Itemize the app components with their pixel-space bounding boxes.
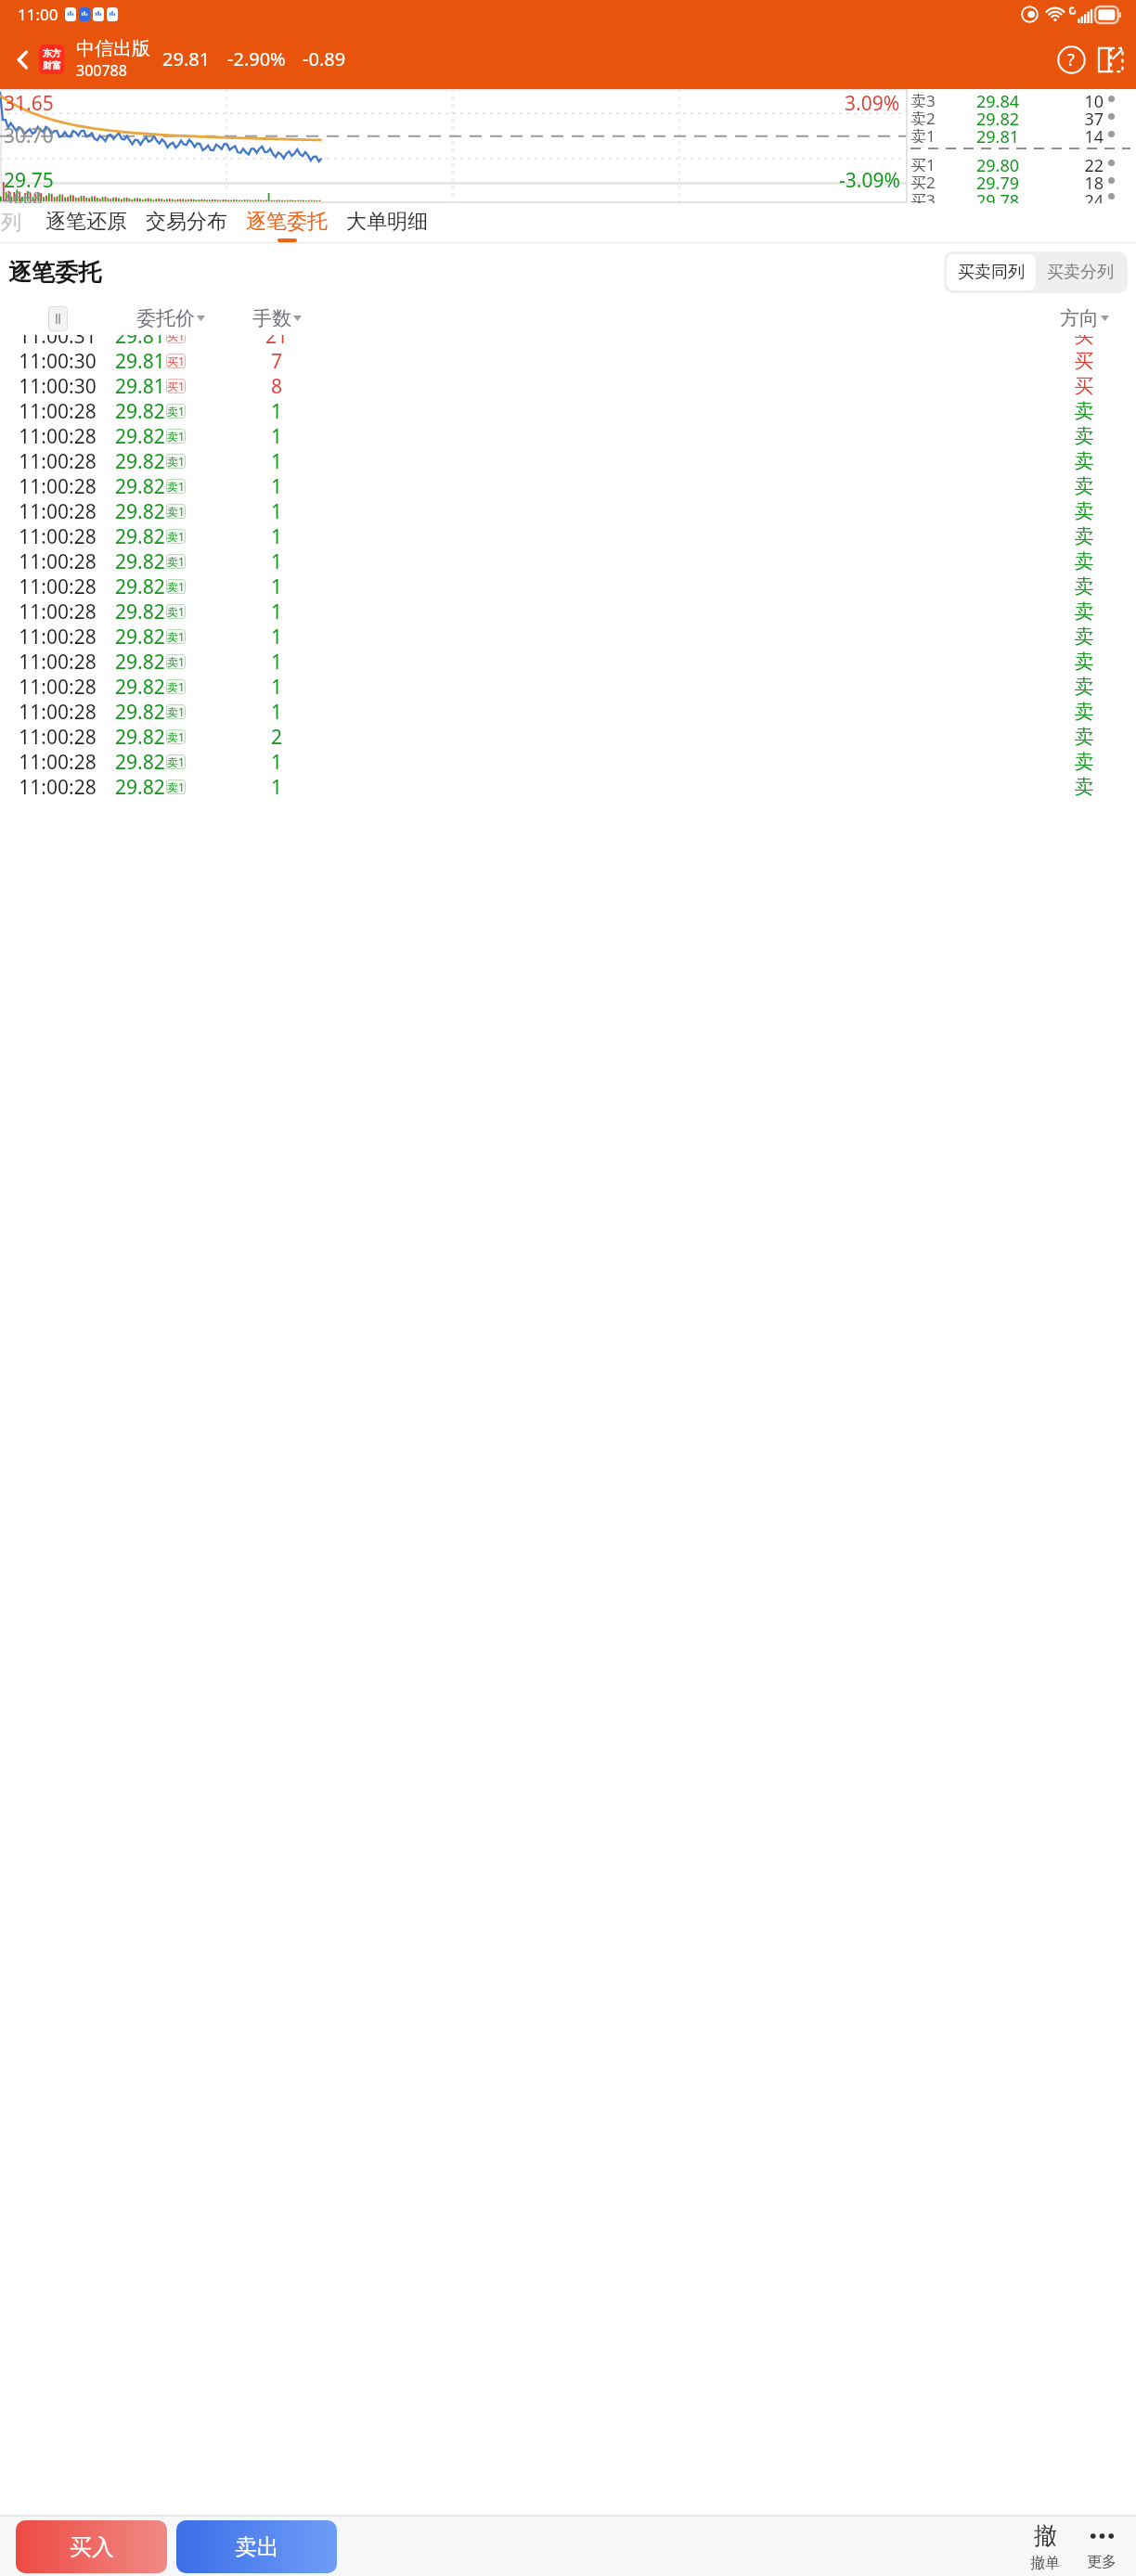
button[interactable]: 卖3 bbox=[910, 90, 1136, 108]
button[interactable]: 11:00:28 bbox=[0, 699, 1136, 724]
button[interactable]: 11:00:28 bbox=[0, 473, 1136, 498]
button[interactable]: 11:00:28 bbox=[0, 774, 1136, 799]
staticText: 11:00:30 bbox=[0, 348, 115, 373]
button[interactable]: 卖1 bbox=[910, 125, 1136, 143]
staticText: 买 bbox=[1032, 349, 1136, 373]
staticText: 卖 bbox=[1032, 625, 1136, 649]
button[interactable]: 交易分布 bbox=[146, 203, 227, 243]
staticText: 3.09% bbox=[845, 90, 900, 117]
staticText: 卖1 bbox=[167, 754, 185, 769]
staticText: 11:00:31 bbox=[0, 335, 115, 348]
button[interactable]: 11:00:28 bbox=[0, 523, 1136, 548]
staticText: 1 bbox=[226, 573, 327, 599]
button[interactable]: 买卖分列 bbox=[1036, 254, 1125, 290]
button[interactable]: 逐笔委托 bbox=[246, 203, 328, 243]
staticText: 1 bbox=[226, 398, 327, 423]
button[interactable]: Switch layout bbox=[1093, 43, 1127, 76]
button[interactable]: 卖2 bbox=[910, 108, 1136, 125]
staticText: 方向 bbox=[1060, 306, 1099, 330]
staticText: 8 bbox=[226, 373, 327, 398]
staticText: 卖 bbox=[1032, 700, 1136, 724]
button[interactable]: 买3 bbox=[910, 189, 1136, 203]
staticText: 大单明细 bbox=[346, 209, 428, 235]
button[interactable]: 11:00:30 bbox=[0, 373, 1136, 398]
button[interactable]: 11:00:28 bbox=[0, 724, 1136, 749]
button[interactable]: 11:00:28 bbox=[0, 548, 1136, 573]
button[interactable]: 11:00:28 bbox=[0, 624, 1136, 649]
button[interactable]: East Money bbox=[39, 45, 64, 74]
button[interactable]: 委托价 bbox=[115, 302, 226, 335]
staticText: 手数 bbox=[252, 306, 291, 330]
button[interactable]: 撤 bbox=[1017, 2521, 1073, 2572]
button[interactable]: 方向 bbox=[1032, 302, 1136, 335]
staticText: 24 bbox=[1042, 189, 1104, 203]
staticText: 10 bbox=[1042, 90, 1104, 108]
button[interactable]: 11:00:28 bbox=[0, 649, 1136, 674]
staticText: 29.82 bbox=[115, 724, 165, 749]
staticText: 29.82 bbox=[115, 774, 165, 799]
button[interactable]: 大单明细 bbox=[346, 203, 428, 243]
button[interactable]: 买入 bbox=[16, 2520, 167, 2573]
staticText: 30.70 bbox=[4, 122, 54, 149]
staticText: 买 bbox=[1032, 335, 1136, 348]
staticText: 11:00 bbox=[18, 4, 58, 25]
staticText: 21 bbox=[226, 335, 327, 348]
button[interactable]: 11:00:28 bbox=[0, 398, 1136, 423]
staticText: 卖 bbox=[1032, 574, 1136, 599]
staticText: 11:00:28 bbox=[0, 724, 115, 749]
button[interactable]: 买卖同列 bbox=[947, 254, 1036, 290]
staticText: 29.81 bbox=[953, 125, 1042, 143]
staticText: 1 bbox=[226, 473, 327, 498]
staticText: 交易分布 bbox=[146, 209, 227, 235]
button[interactable]: Pause updates bbox=[48, 306, 68, 331]
staticText: 1 bbox=[226, 774, 327, 799]
staticText: 11:00:28 bbox=[0, 473, 115, 498]
button[interactable]: 买1 bbox=[910, 154, 1136, 172]
staticText: 卖1 bbox=[167, 454, 185, 469]
staticText: 11:00:28 bbox=[0, 548, 115, 573]
staticText: 卖1 bbox=[167, 479, 185, 494]
staticText: 4668 bbox=[4, 187, 43, 203]
staticText: 29.75 bbox=[4, 167, 54, 194]
button[interactable]: 11:00:28 bbox=[0, 674, 1136, 699]
button[interactable]: Help bbox=[1054, 43, 1088, 76]
button[interactable]: 11:00:30 bbox=[0, 348, 1136, 373]
staticText: 1 bbox=[226, 498, 327, 523]
staticText: 买 bbox=[1032, 374, 1136, 398]
button[interactable]: 买2 bbox=[910, 172, 1136, 189]
staticText: 买1 bbox=[167, 335, 185, 343]
staticText: 29.82 bbox=[115, 523, 165, 548]
staticText: 卖 bbox=[1032, 449, 1136, 473]
button[interactable]: 11:00:31 bbox=[0, 335, 1136, 348]
button[interactable]: 手数 bbox=[226, 302, 327, 335]
button[interactable]: More bbox=[1073, 2522, 1130, 2571]
staticText: 29.81 bbox=[162, 46, 211, 71]
staticText: 财富 bbox=[43, 59, 61, 71]
staticText: 11:00:30 bbox=[0, 373, 115, 398]
button[interactable]: 11:00:28 bbox=[0, 573, 1136, 599]
button[interactable]: 11:00:28 bbox=[0, 423, 1136, 448]
staticText: 卖 bbox=[1032, 524, 1136, 548]
staticText: 37 bbox=[1042, 108, 1104, 125]
staticText: 委托价 bbox=[136, 306, 195, 330]
button[interactable]: 逐笔还原 bbox=[45, 203, 127, 243]
button[interactable]: 11:00:28 bbox=[0, 599, 1136, 624]
staticText: 撤单 bbox=[1030, 2554, 1060, 2572]
staticText: 11:00:28 bbox=[0, 573, 115, 599]
staticText: 买2 bbox=[910, 172, 953, 189]
staticText: 卖2 bbox=[910, 108, 953, 125]
button[interactable]: 11:00:28 bbox=[0, 749, 1136, 774]
staticText: 1 bbox=[226, 599, 327, 624]
staticText: 11:00:28 bbox=[0, 774, 115, 799]
staticText: 1 bbox=[226, 649, 327, 674]
staticText: 11:00:28 bbox=[0, 398, 115, 423]
staticText: 11:00:28 bbox=[0, 448, 115, 473]
button[interactable]: 11:00:28 bbox=[0, 498, 1136, 523]
staticText: 逐笔委托 bbox=[246, 209, 328, 235]
button[interactable]: Back bbox=[6, 43, 39, 76]
button[interactable]: 卖出 bbox=[176, 2520, 337, 2573]
staticText: 卖1 bbox=[167, 579, 185, 594]
button[interactable]: 11:00:28 bbox=[0, 448, 1136, 473]
staticText: 买3 bbox=[910, 189, 953, 203]
staticText: 11:00:28 bbox=[0, 523, 115, 548]
